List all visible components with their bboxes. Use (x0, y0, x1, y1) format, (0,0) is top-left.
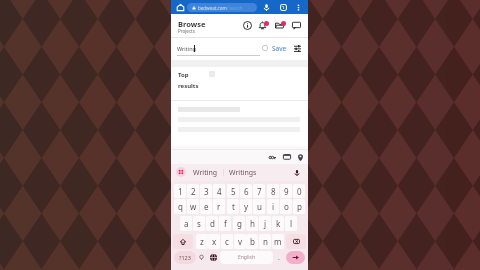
button[interactable]: u (253, 199, 265, 214)
button[interactable]: p (293, 199, 305, 214)
staticText: i (272, 201, 275, 212)
staticText: 7 (257, 186, 262, 197)
button[interactable]: j (259, 216, 271, 231)
staticText: Projects (178, 28, 195, 34)
staticText: d (210, 218, 215, 229)
button[interactable]: Save (270, 42, 289, 54)
staticText: Browse (178, 19, 206, 29)
staticText: u (257, 201, 262, 212)
button[interactable]: Messages (290, 19, 303, 32)
button[interactable]: m (272, 234, 284, 249)
button[interactable]: t (227, 199, 239, 214)
button[interactable]: Passwords (266, 151, 278, 163)
staticText: v (238, 236, 243, 247)
button[interactable]: More options (292, 1, 304, 13)
button[interactable]: w (187, 199, 199, 214)
button[interactable]: z (196, 234, 208, 249)
staticText: p (297, 201, 302, 212)
staticText: n (263, 236, 268, 247)
button[interactable]: English (220, 251, 273, 264)
button[interactable]: 3 (200, 184, 212, 198)
button[interactable]: Emoji (196, 251, 206, 264)
button[interactable]: Payment methods (281, 151, 293, 163)
button[interactable]: k (272, 216, 284, 231)
button[interactable]: bedweat.com (187, 3, 257, 12)
button[interactable]: b (246, 234, 258, 249)
button[interactable]: e (200, 199, 212, 214)
button[interactable]: Voice input (291, 167, 302, 178)
staticText: 5 (231, 186, 236, 197)
staticText: . (278, 253, 280, 263)
staticText: Writing (177, 45, 196, 52)
button[interactable]: 8 (267, 184, 279, 198)
button[interactable]: v (234, 234, 246, 249)
staticText: z (200, 236, 204, 247)
button[interactable]: Tabs (277, 1, 289, 13)
staticText: Save (272, 44, 287, 53)
button[interactable]: 7 (253, 184, 265, 198)
button[interactable]: Keyboard toolbar (176, 167, 186, 177)
button[interactable]: x (208, 234, 220, 249)
button[interactable]: Writing (190, 164, 220, 181)
button[interactable]: Writings (224, 164, 262, 181)
button[interactable]: Notifications (256, 19, 269, 32)
button[interactable]: 9 (280, 184, 292, 198)
button[interactable]: Voice search (260, 1, 272, 13)
staticText: /search (227, 5, 243, 11)
staticText: 0 (297, 186, 302, 197)
staticText: y (244, 201, 249, 212)
button[interactable]: c (221, 234, 233, 249)
staticText: m (274, 236, 282, 247)
button[interactable]: Change keyboard (208, 251, 219, 264)
button[interactable]: 5 (227, 184, 239, 198)
button[interactable]: n (259, 234, 271, 249)
button[interactable]: 2 (187, 184, 199, 198)
button[interactable]: f (219, 216, 231, 231)
staticText: e (204, 201, 209, 212)
button[interactable]: r (213, 199, 225, 214)
button[interactable]: Info (241, 19, 254, 32)
staticText: b (250, 236, 255, 247)
button[interactable]: i (267, 199, 279, 214)
button[interactable]: y (240, 199, 252, 214)
button[interactable]: a (180, 216, 192, 231)
staticText: s (197, 218, 201, 229)
staticText: results (178, 82, 199, 90)
button[interactable]: 0 (293, 184, 305, 198)
staticText: 1 (282, 5, 285, 10)
button[interactable]: Home (174, 1, 186, 13)
button[interactable]: ?123 (174, 251, 196, 264)
button[interactable]: Period (274, 251, 284, 264)
staticText: 9 (284, 186, 289, 197)
button[interactable]: s (193, 216, 205, 231)
staticText: l (290, 218, 293, 229)
staticText: g (237, 218, 242, 229)
button[interactable]: l (285, 216, 297, 231)
button[interactable]: Enter (286, 251, 305, 264)
staticText: j (264, 218, 267, 229)
button[interactable]: d (206, 216, 218, 231)
staticText: w (190, 201, 197, 212)
button[interactable]: Addresses (294, 151, 306, 163)
button[interactable]: Search settings (291, 42, 303, 54)
staticText: Writing (193, 168, 218, 178)
button[interactable]: Backspace (286, 234, 306, 249)
button[interactable]: 6 (240, 184, 252, 198)
staticText: r (217, 201, 221, 212)
staticText: t (232, 201, 235, 212)
button[interactable]: 1 (174, 184, 186, 198)
button[interactable]: g (233, 216, 245, 231)
staticText: 6 (244, 186, 249, 197)
button[interactable]: h (246, 216, 258, 231)
staticText: 3 (204, 186, 209, 197)
button[interactable]: o (280, 199, 292, 214)
staticText: 4 (217, 186, 222, 197)
button[interactable]: 4 (213, 184, 225, 198)
staticText: 2 (191, 186, 196, 197)
button[interactable]: Shift (173, 234, 193, 249)
staticText: ?123 (179, 254, 191, 261)
button[interactable]: Clear (259, 42, 271, 54)
button[interactable]: q (174, 199, 186, 214)
button[interactable]: Files (273, 19, 286, 32)
staticText: a (184, 218, 189, 229)
